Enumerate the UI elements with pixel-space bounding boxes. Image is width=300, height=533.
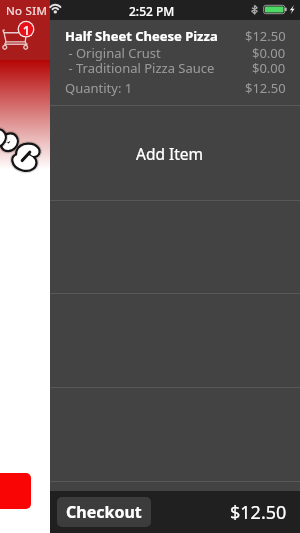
staticText: No SIM [6, 3, 48, 19]
staticText: Checkout [66, 501, 142, 523]
staticText: $0.00 [252, 59, 286, 77]
staticText: $12.50 [230, 500, 287, 525]
button[interactable]: Cart, 1 item [0, 0, 50, 60]
staticText: $0.00 [252, 44, 286, 62]
staticText: 2:52 PM [129, 3, 175, 19]
staticText: $12.50 [245, 27, 286, 45]
staticText: - Traditional Pizza Sauce [65, 59, 215, 77]
button[interactable]: Add Item [50, 106, 300, 201]
staticText: - Original Crust [65, 44, 161, 62]
button[interactable]: Start order [0, 473, 31, 509]
button[interactable]: Checkout [57, 497, 151, 527]
staticText: Add Item [136, 143, 204, 164]
staticText: Half Sheet Cheese Pizza [65, 27, 218, 45]
button[interactable]: Half Sheet Cheese Pizza [50, 0, 300, 106]
staticText: 1 [23, 23, 30, 39]
staticText: $12.50 [245, 79, 286, 97]
staticText: Quantity: 1 [65, 79, 133, 97]
